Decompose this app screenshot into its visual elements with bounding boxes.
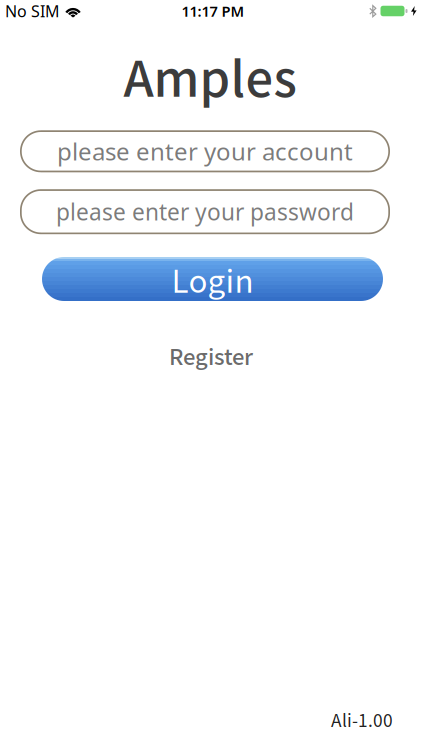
staticText: please enter your password: [56, 197, 354, 227]
button[interactable]: Login: [42, 257, 383, 301]
staticText: Ali-1.00: [331, 707, 393, 732]
button[interactable]: please enter your account: [20, 130, 390, 172]
staticText: Register: [169, 340, 253, 371]
staticText: Amples: [123, 40, 296, 111]
staticText: 11:17 PM: [181, 1, 244, 21]
staticText: please enter your account: [57, 135, 353, 167]
staticText: No SIM: [5, 0, 60, 22]
button[interactable]: Register: [169, 340, 253, 371]
button[interactable]: please enter your password: [20, 189, 390, 234]
staticText: Login: [171, 256, 253, 302]
